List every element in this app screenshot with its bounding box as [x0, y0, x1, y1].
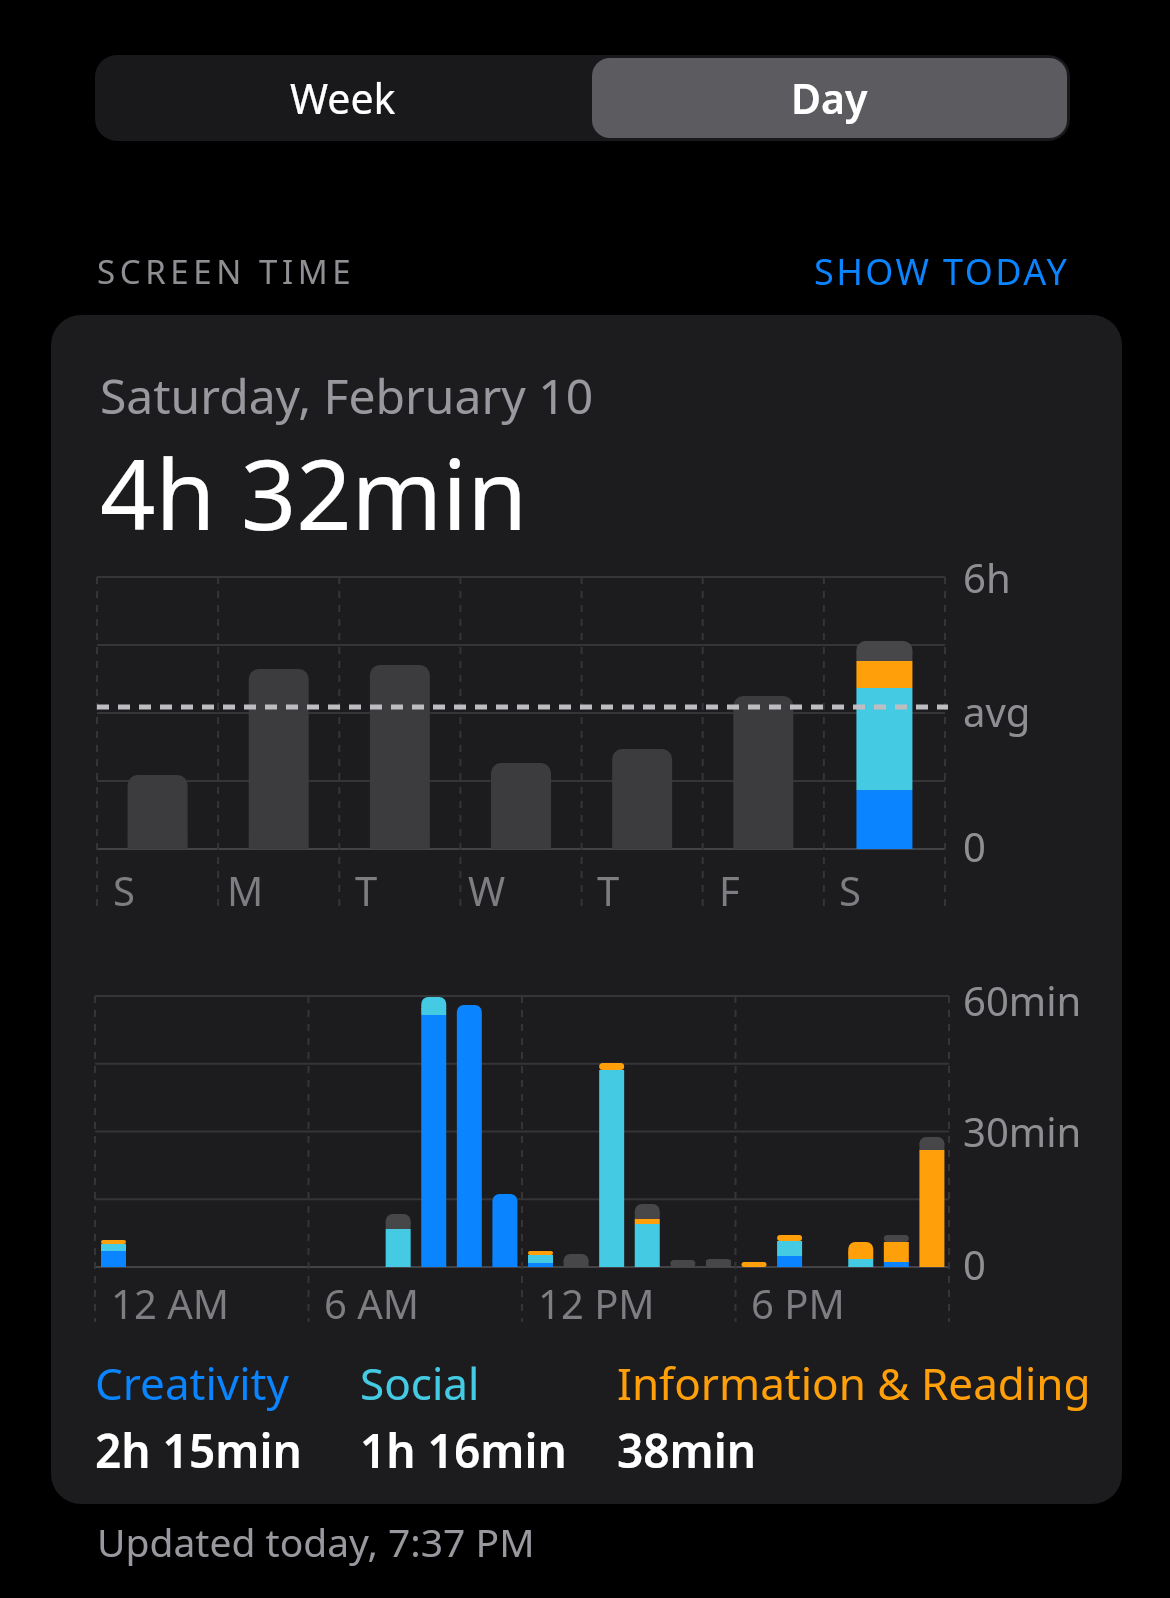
staticText: 60min	[963, 973, 1082, 1027]
button[interactable]: SHOW TODAY	[370, 211, 1070, 331]
staticText: 2h 15min	[95, 1419, 302, 1482]
staticText: Creativity	[95, 1353, 289, 1413]
staticText: Information & Reading	[617, 1353, 1091, 1413]
staticText: Social	[360, 1353, 480, 1413]
staticText: T	[597, 863, 620, 917]
staticText: 38min	[617, 1419, 757, 1482]
staticText: W	[468, 863, 506, 917]
staticText: SHOW TODAY	[814, 247, 1070, 296]
staticText: M	[227, 863, 264, 917]
staticText: 0	[963, 1237, 986, 1291]
button[interactable]	[592, 58, 1067, 138]
staticText: avg	[963, 684, 1031, 738]
staticText: Saturday, February 10	[100, 363, 594, 428]
staticText: 6 AM	[324, 1276, 420, 1330]
staticText: T	[355, 863, 378, 917]
staticText: F	[719, 863, 740, 917]
staticText: 12 PM	[538, 1276, 655, 1330]
staticText: 4h 32min	[100, 426, 528, 546]
staticText: 6h	[963, 550, 1011, 604]
staticText: Week	[290, 70, 396, 126]
staticText: Day	[791, 70, 868, 126]
button[interactable]	[95, 55, 582, 141]
staticText: S	[839, 863, 861, 917]
staticText: 30min	[963, 1104, 1082, 1158]
staticText: 0	[963, 819, 986, 873]
staticText: S	[113, 863, 135, 917]
staticText: SCREEN TIME	[97, 249, 356, 294]
staticText: Updated today, 7:37 PM	[97, 1515, 535, 1568]
staticText: 12 AM	[111, 1276, 229, 1330]
staticText: 6 PM	[751, 1276, 845, 1330]
staticText: 1h 16min	[360, 1419, 567, 1482]
